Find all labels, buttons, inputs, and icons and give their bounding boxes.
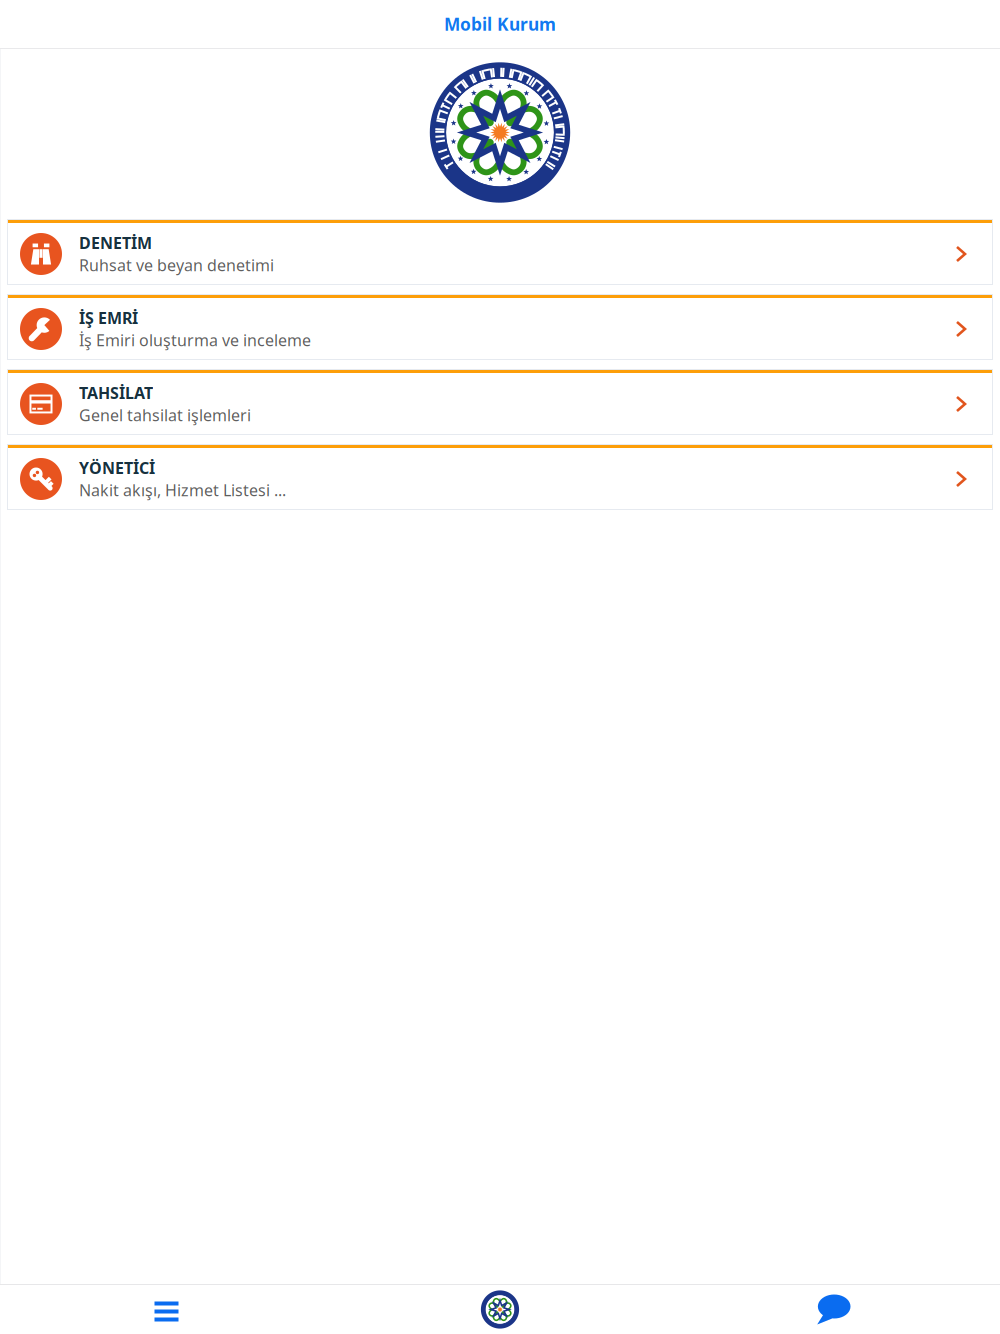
staticText: TAHSİLAT	[79, 382, 153, 403]
staticText: DENETİM	[79, 232, 152, 253]
button[interactable]: TAHSİLAT	[0, 369, 1000, 435]
button[interactable]: Home	[333, 1285, 667, 1334]
staticText: YÖNETİCİ	[79, 457, 155, 478]
staticText: Nakit akışı, Hizmet Listesi ...	[79, 479, 286, 501]
button[interactable]: Menu	[0, 1285, 333, 1334]
staticText: Genel tahsilat işlemleri	[79, 404, 251, 426]
staticText: Mobil Kurum	[444, 12, 556, 35]
button[interactable]: İŞ EMRİ	[0, 294, 1000, 360]
button[interactable]: YÖNETİCİ	[0, 444, 1000, 510]
staticText: Ruhsat ve beyan denetimi	[79, 254, 274, 276]
staticText: İş Emiri oluşturma ve inceleme	[79, 329, 311, 351]
staticText: İŞ EMRİ	[79, 307, 138, 328]
button[interactable]: DENETİM	[0, 219, 1000, 285]
button[interactable]: Messages	[667, 1285, 1000, 1334]
